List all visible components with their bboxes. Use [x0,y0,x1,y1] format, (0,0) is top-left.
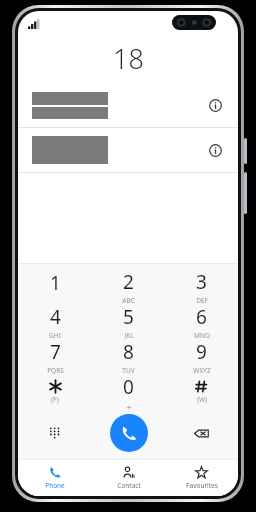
staticText: Favourites [186,481,218,490]
button[interactable]: Hide keypad [18,409,92,457]
button[interactable]: 2 [92,269,165,304]
staticText: TUV [122,366,135,374]
button[interactable]: (W) [165,374,238,409]
button[interactable]: Contact details [200,135,230,165]
button[interactable]: Favourites [165,460,238,496]
staticText: ABC [122,296,135,304]
button[interactable]: 9 [165,339,238,374]
button[interactable]: Phone [18,460,92,496]
staticText: 7 [50,339,61,365]
staticText: PQRS [47,366,64,374]
button[interactable]: Contact details [18,128,238,172]
button[interactable]: Contact details [200,90,230,120]
staticText: JKL [124,331,134,339]
staticText: 18 [113,40,144,77]
staticText: (P) [51,395,59,404]
button[interactable]: 8 [92,339,165,374]
button[interactable]: Contact details [18,83,238,127]
button[interactable]: Call [110,414,148,452]
staticText: Phone [45,481,65,490]
button[interactable]: Backspace [165,409,238,457]
staticText: 6 [196,304,207,330]
staticText: MNO [194,331,210,339]
staticText: 5 [123,304,134,330]
staticText: GHI [49,331,61,339]
button[interactable]: 4 [18,304,92,339]
button[interactable]: (P) [18,374,92,409]
button[interactable]: Contact [92,460,165,496]
staticText: DEF [196,296,208,304]
staticText: (W) [197,395,207,404]
button[interactable]: 0 [92,374,165,409]
staticText: 4 [50,304,61,330]
button[interactable]: 6 [165,304,238,339]
staticText: 1 [50,270,61,296]
staticText: WXYZ [193,366,211,374]
staticText: Contact [117,481,141,490]
staticText: 2 [123,269,134,295]
button[interactable]: 5 [92,304,165,339]
button[interactable]: 7 [18,339,92,374]
staticText: + [126,401,132,409]
button[interactable]: 1 [18,269,92,304]
staticText: 9 [196,339,207,365]
staticText: 0 [123,374,134,400]
staticText: 3 [196,269,207,295]
staticText: 8 [123,339,134,365]
button[interactable]: 3 [165,269,238,304]
